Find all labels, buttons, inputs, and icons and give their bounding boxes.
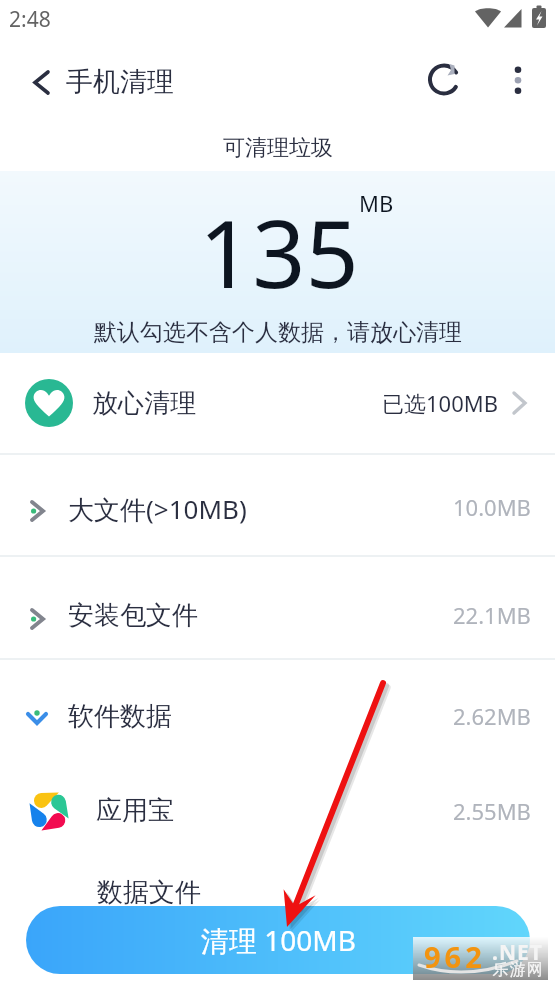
staticText: 已选100MB <box>382 388 499 418</box>
staticText: 清理 100MB <box>201 921 356 959</box>
staticText: 数据文件 <box>97 876 201 909</box>
button[interactable]: 软件数据 <box>0 660 555 761</box>
button[interactable]: 应用宝 <box>0 764 555 857</box>
other: Back <box>33 70 50 95</box>
staticText: 22.1MB <box>453 600 531 630</box>
button[interactable]: 大文件(>10MB) <box>0 455 555 555</box>
button[interactable]: 清理 100MB <box>26 906 530 974</box>
staticText: 手机清理 <box>66 65 174 99</box>
staticText: 放心清理 <box>92 387 196 420</box>
button[interactable]: More options <box>488 45 548 118</box>
staticText: 2.62MB <box>453 701 531 731</box>
button[interactable]: 数据文件 <box>0 850 555 920</box>
staticText: 大文件(>10MB) <box>68 491 247 527</box>
staticText: 2.55MB <box>453 796 531 826</box>
button[interactable]: Back <box>0 45 200 118</box>
staticText: 10.0MB <box>453 492 531 522</box>
staticText: 可清理垃圾 <box>223 134 333 162</box>
staticText: 应用宝 <box>96 794 174 827</box>
staticText: 135 <box>199 189 359 316</box>
staticText: 962 <box>424 937 486 976</box>
staticText: .NET <box>492 938 543 967</box>
button[interactable]: 安装包文件 <box>0 557 555 658</box>
staticText: MB <box>359 188 394 218</box>
button[interactable]: Refresh <box>413 45 475 118</box>
staticText: 软件数据 <box>68 700 172 733</box>
staticText: 乐游网 <box>492 960 543 980</box>
button[interactable]: 放心清理 <box>0 353 555 453</box>
staticText: 2:48 <box>9 5 51 34</box>
staticText: 默认勾选不含个人数据，请放心清理 <box>94 318 462 347</box>
staticText: 安装包文件 <box>68 599 198 632</box>
